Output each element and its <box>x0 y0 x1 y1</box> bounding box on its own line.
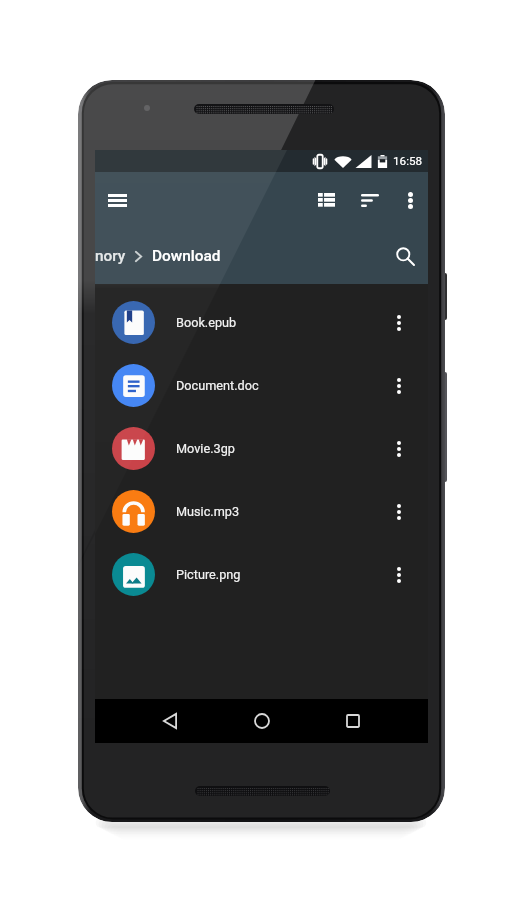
button[interactable]: More options for Movie.3gp <box>379 417 419 480</box>
button[interactable]: More options <box>392 172 428 228</box>
button[interactable]: Search <box>382 228 428 284</box>
button[interactable]: Picture.png <box>95 543 428 606</box>
staticText: nory <box>95 247 126 265</box>
staticText: Picture.png <box>176 567 379 582</box>
button[interactable]: Change view <box>304 172 348 228</box>
button[interactable]: Sort <box>348 172 392 228</box>
button[interactable]: More options for Document.doc <box>379 354 419 417</box>
staticText: Book.epub <box>176 315 379 330</box>
button[interactable]: Open navigation menu <box>95 172 139 228</box>
button[interactable]: Music.mp3 <box>95 480 428 543</box>
button[interactable]: More options for Music.mp3 <box>379 480 419 543</box>
button[interactable]: Back <box>148 699 192 743</box>
button[interactable]: Recent apps <box>331 699 375 743</box>
staticText: 16:58 <box>393 154 423 168</box>
staticText: Movie.3gp <box>176 441 379 456</box>
button[interactable]: Book.epub <box>95 291 428 354</box>
button[interactable]: More options for Book.epub <box>379 291 419 354</box>
button[interactable]: More options for Picture.png <box>379 543 419 606</box>
button[interactable]: Movie.3gp <box>95 417 428 480</box>
staticText: Download <box>152 247 221 265</box>
button[interactable]: Home <box>240 699 284 743</box>
staticText: Document.doc <box>176 378 379 393</box>
staticText: Music.mp3 <box>176 504 379 519</box>
button[interactable]: Document.doc <box>95 354 428 417</box>
